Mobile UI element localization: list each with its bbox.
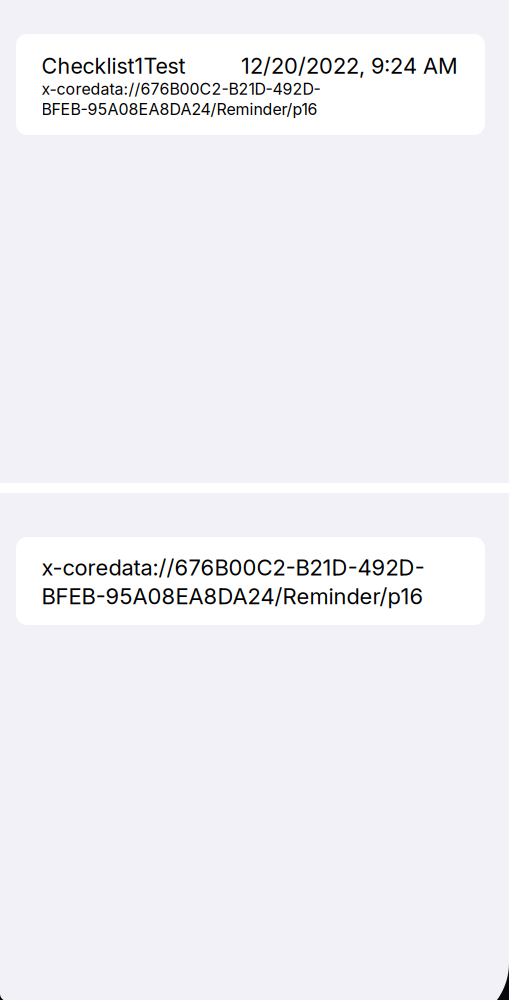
staticText: x-coredata://676B00C2-B21D-492D-BFEB-95A… [41, 554, 424, 609]
staticText: 12/20/2022, 9:24 AM [241, 53, 458, 79]
staticText: Checklist1Test [42, 53, 186, 79]
button[interactable]: Checklist1Test [16, 34, 485, 135]
button[interactable]: x-coredata://676B00C2-B21D-492D-BFEB-95A… [16, 537, 485, 625]
staticText: x-coredata://676B00C2-B21D-492D-BFEB-95A… [42, 79, 321, 119]
